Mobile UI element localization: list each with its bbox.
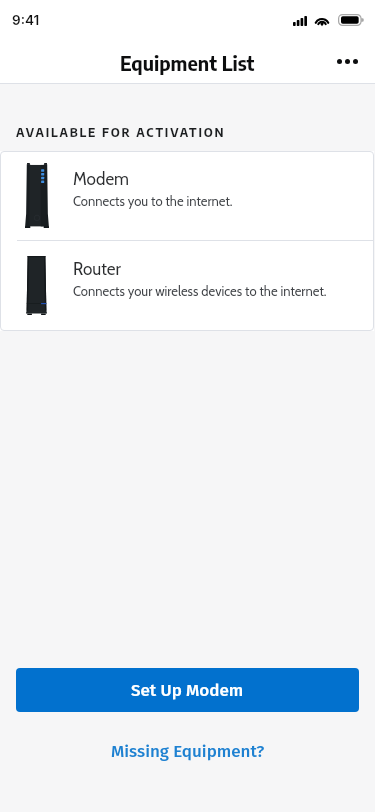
button[interactable]: Modem (0, 151, 374, 240)
staticText: Connects you to the internet. (73, 193, 233, 209)
staticText: Modem (73, 169, 129, 190)
staticText: AVAILABLE FOR ACTIVATION (16, 124, 226, 140)
staticText: Equipment List (120, 50, 255, 75)
button[interactable]: Router (0, 241, 374, 330)
staticText: Connects your wireless devices to the in… (73, 283, 327, 299)
staticText: 9:41 (12, 12, 40, 28)
button[interactable]: Set Up Modem (16, 668, 359, 712)
staticText: Router (73, 259, 121, 280)
button[interactable]: More options (327, 42, 367, 81)
button[interactable]: Missing Equipment? (0, 738, 375, 764)
staticText: Set Up Modem (131, 680, 244, 700)
staticText: Missing Equipment? (111, 741, 265, 761)
